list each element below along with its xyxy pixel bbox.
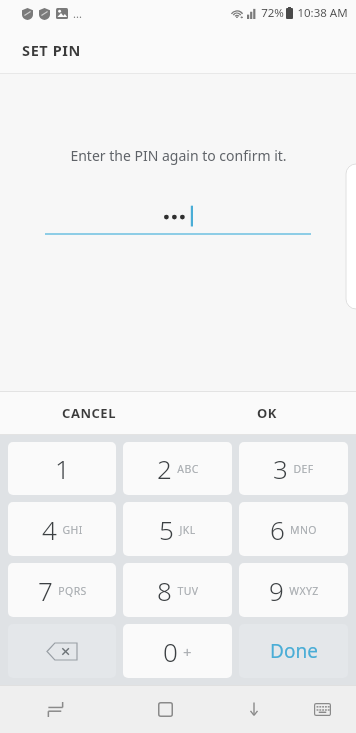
staticText: 8 xyxy=(157,573,172,608)
button[interactable]: Hide keyboard xyxy=(220,685,288,733)
button[interactable]: 2 xyxy=(123,442,232,495)
button[interactable]: 7 xyxy=(8,563,116,617)
staticText: 1 xyxy=(55,451,70,486)
staticText: + xyxy=(183,642,192,662)
button[interactable]: 9 xyxy=(239,563,348,617)
staticText: PQRS xyxy=(58,584,87,598)
staticText: CANCEL xyxy=(62,404,116,422)
button[interactable]: 3 xyxy=(239,442,348,495)
button[interactable]: 6 xyxy=(239,502,348,556)
button[interactable]: 8 xyxy=(123,563,232,617)
button[interactable]: 4 xyxy=(8,502,116,556)
staticText: ... xyxy=(73,6,82,21)
staticText: ABC xyxy=(177,462,199,476)
staticText: MNO xyxy=(290,523,317,537)
staticText: Done xyxy=(270,638,318,664)
staticText: 4 xyxy=(42,512,57,547)
staticText: TUV xyxy=(177,584,199,598)
button[interactable]: OK xyxy=(178,392,356,434)
staticText: GHI xyxy=(62,523,83,537)
button[interactable]: CANCEL xyxy=(0,392,178,434)
staticText: OK xyxy=(257,404,277,422)
staticText: 2 xyxy=(157,451,172,486)
staticText: SET PIN xyxy=(22,40,81,60)
button[interactable]: 5 xyxy=(123,502,232,556)
staticText: 7 xyxy=(38,573,53,608)
staticText: DEF xyxy=(293,462,314,476)
button[interactable]: Home xyxy=(110,685,220,733)
button[interactable]: 0 xyxy=(123,624,232,678)
staticText: Enter the PIN again to confirm it. xyxy=(70,146,287,165)
button[interactable]: Recents xyxy=(0,685,110,733)
staticText: 10:38 AM xyxy=(297,5,348,21)
staticText: 0 xyxy=(163,634,178,669)
button[interactable]: Done xyxy=(239,624,348,678)
staticText: WXYZ xyxy=(289,584,319,598)
button[interactable]: 1 xyxy=(8,442,116,495)
staticText: JKL xyxy=(179,523,196,537)
staticText: 72% xyxy=(261,5,284,21)
button[interactable]: Change keyboard xyxy=(288,685,356,733)
staticText: 3 xyxy=(273,451,288,486)
staticText: 5 xyxy=(159,512,174,547)
staticText: 6 xyxy=(270,512,285,547)
button[interactable]: Backspace xyxy=(8,624,116,678)
staticText: 9 xyxy=(269,573,284,608)
